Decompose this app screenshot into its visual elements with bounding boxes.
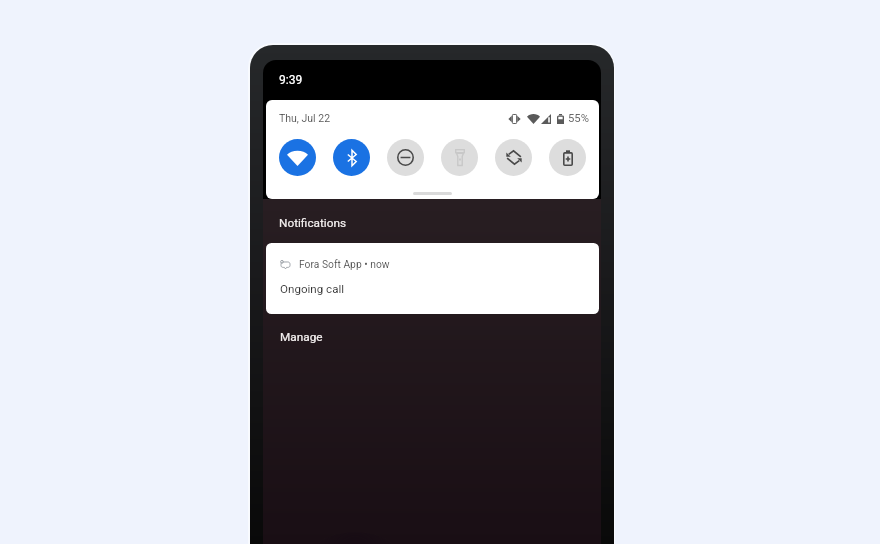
staticText: Thu, Jul 22: [279, 112, 331, 124]
button[interactable]: Battery Saver: [549, 139, 586, 176]
button[interactable]: Fora Soft App • now: [266, 243, 599, 314]
staticText: 9:39: [279, 73, 303, 87]
button[interactable]: Expand quick settings: [413, 192, 452, 195]
staticText: Notifications: [279, 216, 347, 230]
button[interactable]: Wi-Fi: [279, 139, 316, 176]
staticText: Ongoing call: [280, 282, 345, 296]
button[interactable]: Flashlight: [441, 139, 478, 176]
button[interactable]: Manage: [273, 325, 329, 349]
button[interactable]: Auto-rotate: [495, 139, 532, 176]
staticText: Fora Soft App • now: [299, 258, 390, 270]
button[interactable]: Bluetooth: [333, 139, 370, 176]
button[interactable]: Do not disturb: [387, 139, 424, 176]
staticText: 55%: [568, 112, 589, 125]
staticText: Manage: [280, 330, 323, 344]
